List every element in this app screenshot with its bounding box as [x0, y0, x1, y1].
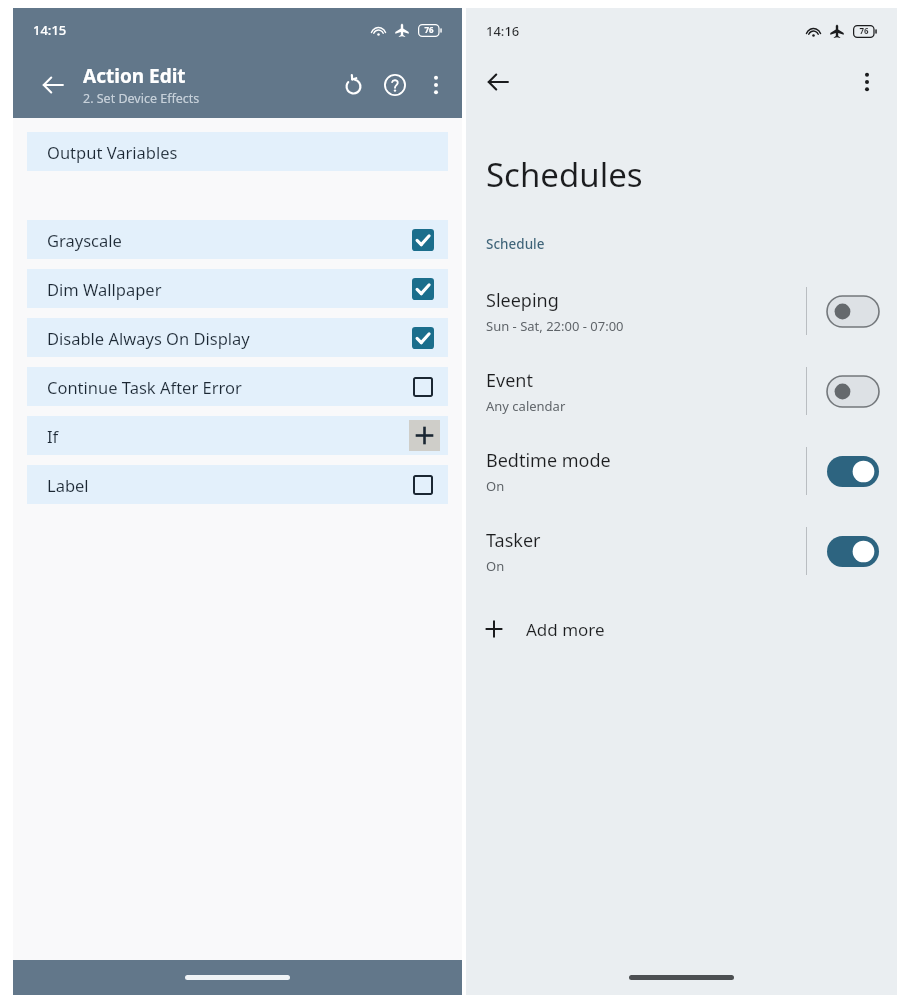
button[interactable]: Disable Always On Display on	[406, 321, 440, 355]
staticText: Sun - Sat, 22:00 - 07:00	[486, 317, 624, 335]
staticText: On	[486, 557, 505, 575]
staticText: 2. Set Device Effects	[83, 90, 200, 107]
button[interactable]: Grayscale	[27, 220, 448, 259]
staticText: 14:15	[33, 21, 67, 39]
staticText: Event	[486, 368, 533, 393]
button[interactable]: More options	[416, 65, 456, 105]
button[interactable]: Sleeping	[466, 271, 897, 351]
button[interactable]: Tasker	[466, 511, 897, 591]
staticText: Sleeping	[486, 288, 559, 313]
button[interactable]: If	[27, 416, 448, 455]
button[interactable]: Disable Always On Display	[27, 318, 448, 357]
button[interactable]: Event toggle	[825, 370, 881, 412]
staticText: 76	[424, 25, 434, 36]
button[interactable]: Continue Task After Error	[27, 367, 448, 406]
staticText: If	[47, 425, 59, 447]
button[interactable]: Add condition	[409, 420, 440, 451]
button[interactable]: Output Variables	[27, 132, 448, 171]
button[interactable]: Add more	[466, 607, 897, 651]
staticText: Output Variables	[47, 141, 178, 163]
button[interactable]: Back	[474, 58, 522, 106]
staticText: 14:16	[486, 22, 520, 40]
staticText: Continue Task After Error	[47, 376, 242, 398]
staticText: Label	[47, 474, 89, 496]
staticText: Bedtime mode	[486, 448, 611, 473]
button[interactable]: Back	[29, 61, 77, 109]
button[interactable]: Continue Task After Error off	[406, 370, 440, 404]
button[interactable]: Dim Wallpaper	[27, 269, 448, 308]
button[interactable]: Undo	[332, 64, 374, 106]
staticText: Disable Always On Display	[47, 327, 250, 349]
button[interactable]: More options	[845, 60, 889, 104]
staticText: 76	[859, 26, 869, 37]
staticText: Dim Wallpaper	[47, 278, 162, 300]
staticText: On	[486, 477, 505, 495]
button[interactable]: Grayscale on	[406, 223, 440, 257]
staticText: Any calendar	[486, 397, 566, 415]
button[interactable]: Bedtime mode toggle	[825, 450, 881, 492]
button[interactable]: Sleeping toggle	[825, 290, 881, 332]
button[interactable]: Tasker toggle	[825, 530, 881, 572]
button[interactable]: Event	[466, 351, 897, 431]
button[interactable]: Help	[374, 64, 416, 106]
staticText: Add more	[526, 618, 605, 641]
staticText: Schedule	[486, 235, 545, 253]
staticText: Tasker	[486, 528, 541, 553]
button[interactable]: Label	[27, 465, 448, 504]
button[interactable]: Dim Wallpaper on	[406, 272, 440, 306]
staticText: Schedules	[486, 152, 643, 197]
button[interactable]: Label off	[406, 468, 440, 502]
staticText: Grayscale	[47, 229, 122, 251]
staticText: Action Edit	[83, 63, 186, 89]
button[interactable]: Bedtime mode	[466, 431, 897, 511]
